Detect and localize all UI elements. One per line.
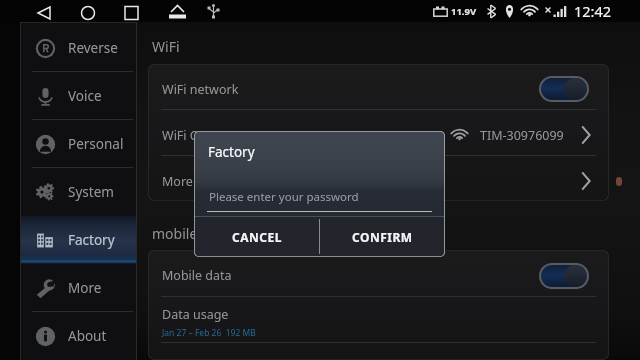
other: Open (580, 171, 591, 191)
staticText: About (68, 327, 107, 345)
button[interactable]: About (21, 312, 136, 360)
button[interactable]: CONFIRM (320, 216, 445, 257)
button[interactable] (148, 343, 609, 360)
button[interactable]: System (21, 168, 136, 216)
button[interactable]: CANCEL (194, 216, 319, 257)
other: Open (580, 125, 591, 145)
staticText: Please enter your password (209, 189, 359, 205)
staticText: Jan 27 – Feb 26 192 MB (162, 327, 256, 339)
staticText: More (68, 279, 102, 297)
staticText: CONFIRM (352, 229, 413, 245)
staticText: mobile (152, 224, 198, 243)
button[interactable]: More (21, 264, 136, 312)
staticText: WiFi network (162, 81, 539, 98)
staticText: Mobile data (162, 267, 539, 284)
button[interactable]: Reverse (21, 23, 136, 72)
staticText: Factory (68, 231, 115, 249)
staticText: CANCEL (232, 229, 282, 245)
staticText: Factory (208, 143, 255, 161)
staticText: Reverse (68, 39, 118, 57)
button[interactable]: Toggle (541, 265, 587, 287)
button[interactable]: WiFi network (148, 64, 609, 109)
button[interactable]: WiFi Connect (148, 110, 609, 155)
staticText: Personal (68, 135, 124, 153)
staticText: 11.9V (451, 5, 477, 18)
button[interactable]: Toggle (541, 78, 587, 100)
button[interactable]: More (148, 156, 609, 201)
button[interactable]: Data usage (148, 297, 609, 342)
button[interactable]: Voice (21, 72, 136, 120)
staticText: Data usage (162, 306, 229, 323)
staticText: Voice (68, 87, 102, 105)
staticText: WiFi (152, 37, 180, 56)
staticText: WiFi Connect (162, 127, 451, 144)
staticText: TIM-30976099 (480, 127, 564, 144)
button[interactable]: Factory (21, 216, 136, 264)
button[interactable]: Personal (21, 120, 136, 168)
staticText: More (162, 173, 580, 190)
button[interactable]: Mobile data (148, 250, 609, 296)
staticText: System (68, 183, 114, 201)
staticText: 12:42 (574, 1, 612, 21)
